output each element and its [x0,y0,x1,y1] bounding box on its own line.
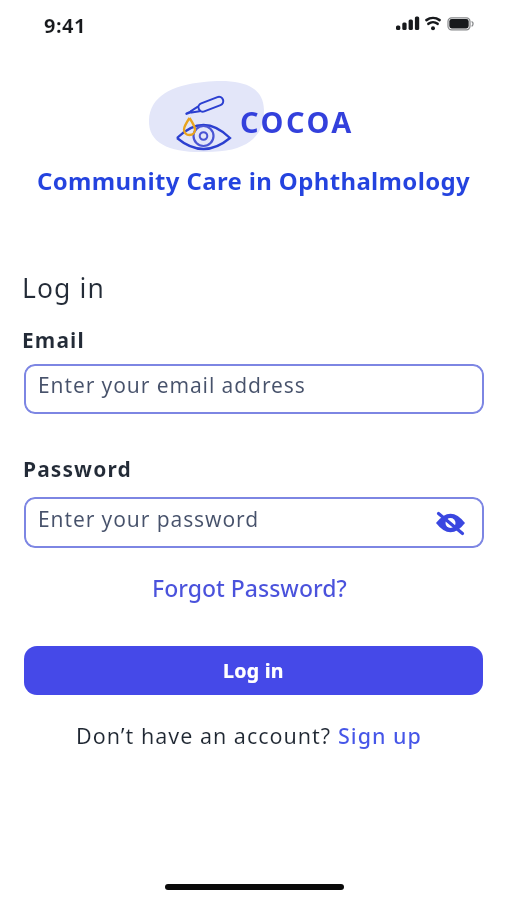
staticText: Email [22,326,85,355]
staticText: COCOA [240,102,354,141]
staticText: Password [23,455,132,484]
staticText: Log in [22,270,105,306]
button[interactable] [436,510,465,536]
button[interactable]: Log in [24,646,483,695]
staticText: Log in [223,657,284,684]
button[interactable]: Enter your password [24,497,484,548]
staticText: Community Care in Ophthalmology [37,164,471,197]
button[interactable]: Forgot Password? [152,572,347,603]
staticText: Enter your password [38,505,260,534]
button[interactable]: Sign up [338,721,422,750]
staticText: Don’t have an account? [76,721,338,750]
staticText: 9:41 [44,12,86,39]
button[interactable]: Enter your email address [24,364,484,414]
staticText: Enter your email address [38,371,306,400]
